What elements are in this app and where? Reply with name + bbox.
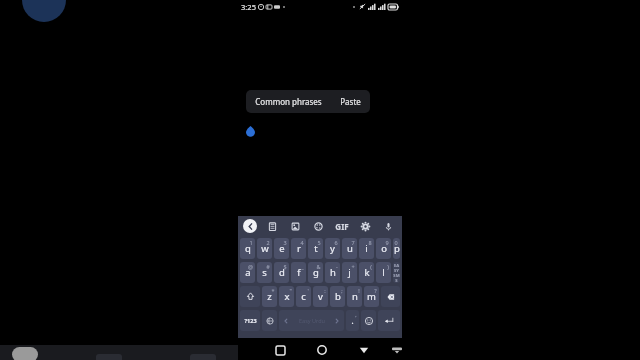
button[interactable]: e: [274, 238, 289, 259]
staticText: 2: [266, 239, 270, 246]
button[interactable]: n: [347, 286, 362, 307]
staticText: 6: [334, 239, 338, 246]
staticText: 3: [283, 239, 287, 246]
staticText: c: [301, 290, 306, 303]
button[interactable]: GIF: [333, 217, 351, 235]
staticText: e: [279, 242, 285, 255]
button[interactable]: o: [376, 238, 391, 259]
staticText: 8: [368, 239, 372, 246]
button[interactable]: Space: [279, 310, 344, 331]
button[interactable]: Emoji: [361, 310, 376, 331]
button[interactable]: Shift: [240, 286, 260, 307]
button[interactable]: c: [296, 286, 311, 307]
button[interactable]: Hide keyboard: [392, 340, 402, 360]
staticText: _: [301, 263, 304, 270]
staticText: ?123: [244, 317, 257, 324]
staticText: p: [394, 242, 400, 255]
staticText: !: [358, 287, 360, 294]
button[interactable]: Themes: [309, 217, 327, 235]
staticText: r: [297, 242, 301, 255]
button[interactable]: x: [279, 286, 294, 307]
staticText: s: [262, 266, 267, 279]
button[interactable]: Change language: [262, 310, 277, 331]
staticText: *: [271, 287, 275, 294]
staticText: 7: [351, 239, 355, 246]
button[interactable]: w: [257, 238, 272, 259]
staticText: b: [335, 290, 341, 303]
button[interactable]: EASY: [393, 262, 400, 283]
button[interactable]: h: [325, 262, 340, 283]
button[interactable]: Home: [312, 340, 332, 360]
staticText: 0: [394, 239, 398, 246]
button[interactable]: d: [274, 262, 289, 283]
button[interactable]: r: [291, 238, 306, 259]
staticText: x: [284, 290, 290, 303]
button[interactable]: f: [291, 262, 306, 283]
button[interactable]: Voice input: [379, 217, 397, 235]
button[interactable]: Back: [354, 340, 374, 360]
staticText: d: [279, 266, 285, 279]
staticText: v: [318, 290, 323, 303]
staticText: h: [330, 266, 336, 279]
button[interactable]: v: [313, 286, 328, 307]
staticText: Paste: [340, 96, 361, 107]
staticText: l: [382, 266, 385, 279]
button[interactable]: Stickers: [286, 217, 304, 235]
staticText: (: [370, 263, 372, 270]
staticText: -: [336, 263, 338, 270]
button[interactable]: Backspace: [381, 286, 400, 307]
button[interactable]: a: [240, 262, 255, 283]
staticText: n: [352, 290, 358, 303]
button[interactable]: ?123: [240, 310, 260, 331]
button[interactable]: i: [359, 238, 374, 259]
staticText: +: [351, 263, 355, 270]
staticText: w: [261, 242, 269, 255]
button[interactable]: Common phrases: [246, 90, 331, 113]
staticText: j: [348, 266, 351, 279]
button[interactable]: l: [376, 262, 391, 283]
staticText: ): [387, 263, 389, 270]
button[interactable]: b: [330, 286, 345, 307]
button[interactable]: s: [257, 262, 272, 283]
staticText: ': [307, 287, 309, 294]
staticText: #: [266, 263, 270, 270]
button[interactable]: Enter: [378, 310, 400, 331]
staticText: @: [248, 263, 253, 270]
staticText: t: [314, 242, 318, 255]
staticText: ,: [355, 311, 357, 318]
button[interactable]: m: [364, 286, 379, 307]
button[interactable]: Settings: [356, 217, 374, 235]
staticText: m: [367, 290, 376, 303]
button[interactable]: y: [325, 238, 340, 259]
staticText: i: [365, 242, 368, 255]
staticText: Easy Urdu: [299, 317, 325, 324]
button[interactable]: Recents: [270, 340, 290, 360]
button[interactable]: q: [240, 238, 255, 259]
staticText: 5: [317, 239, 321, 246]
button[interactable]: Back: [243, 219, 257, 233]
button[interactable]: g: [308, 262, 323, 283]
staticText: &: [316, 263, 321, 270]
button[interactable]: j: [342, 262, 357, 283]
button[interactable]: Paste: [331, 90, 370, 113]
staticText: y: [330, 242, 335, 255]
button[interactable]: .: [346, 310, 359, 331]
button[interactable]: u: [342, 238, 357, 259]
staticText: GIF: [335, 221, 349, 232]
button[interactable]: t: [308, 238, 323, 259]
staticText: ": [289, 287, 292, 294]
staticText: EASY: [393, 263, 400, 273]
staticText: u: [347, 242, 353, 255]
staticText: k: [364, 266, 370, 279]
button[interactable]: p: [393, 238, 400, 259]
staticText: q: [245, 242, 251, 255]
button[interactable]: z: [262, 286, 277, 307]
button[interactable]: Clipboard: [263, 217, 281, 235]
staticText: f: [297, 266, 301, 279]
button[interactable]: k: [359, 262, 374, 283]
staticText: .: [351, 314, 354, 327]
staticText: SMS: [393, 273, 400, 283]
staticText: 4: [300, 239, 304, 246]
staticText: ;: [341, 287, 343, 294]
staticText: 3:25: [241, 2, 256, 12]
